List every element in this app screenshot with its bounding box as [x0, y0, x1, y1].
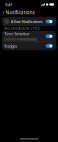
staticText: Badges: [4, 43, 17, 49]
staticText: Deliver immediately: [4, 37, 37, 42]
staticText: 9:41: [5, 2, 12, 7]
button[interactable]: Time Sensitive: [2, 31, 56, 41]
staticText: Notifications: [6, 9, 35, 16]
staticText: Allow Notifications: [11, 19, 43, 24]
button[interactable]: Back: [1, 9, 6, 16]
button[interactable]: Allow Notifications: [2, 17, 56, 26]
staticText: Time Sensitive: [4, 31, 29, 36]
staticText: NOTIFICATION STYLE: [4, 26, 40, 31]
button[interactable]: Badges: [2, 42, 56, 50]
